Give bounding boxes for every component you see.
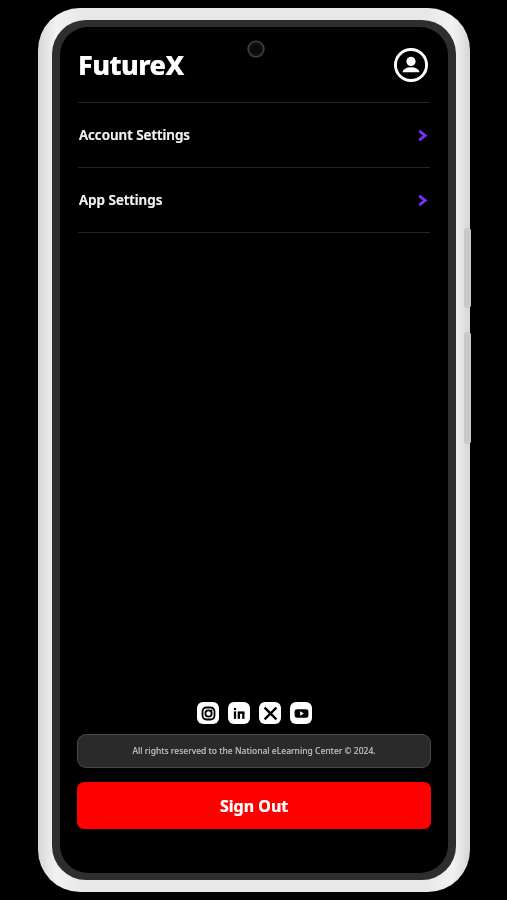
staticText: Account Settings: [79, 126, 190, 144]
button[interactable]: YouTube: [290, 702, 312, 724]
button[interactable]: LinkedIn: [228, 702, 250, 724]
button[interactable]: Sign Out: [77, 782, 431, 829]
button[interactable]: App Settings: [60, 168, 448, 232]
other: Power button: [464, 332, 471, 444]
button[interactable]: Account Settings: [60, 103, 448, 167]
staticText: All rights reserved to the National eLea…: [132, 745, 376, 757]
button[interactable]: X: [259, 702, 281, 724]
staticText: FutureX: [78, 46, 184, 83]
staticText: App Settings: [79, 191, 163, 209]
button[interactable]: Account: [390, 44, 432, 86]
staticText: Sign Out: [220, 795, 289, 817]
other: Volume button: [464, 228, 471, 308]
button[interactable]: Instagram: [197, 702, 219, 724]
